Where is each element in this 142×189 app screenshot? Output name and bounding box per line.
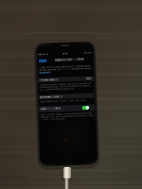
other: Photo of a phone showing battery setting…: [0, 0, 142, 189]
